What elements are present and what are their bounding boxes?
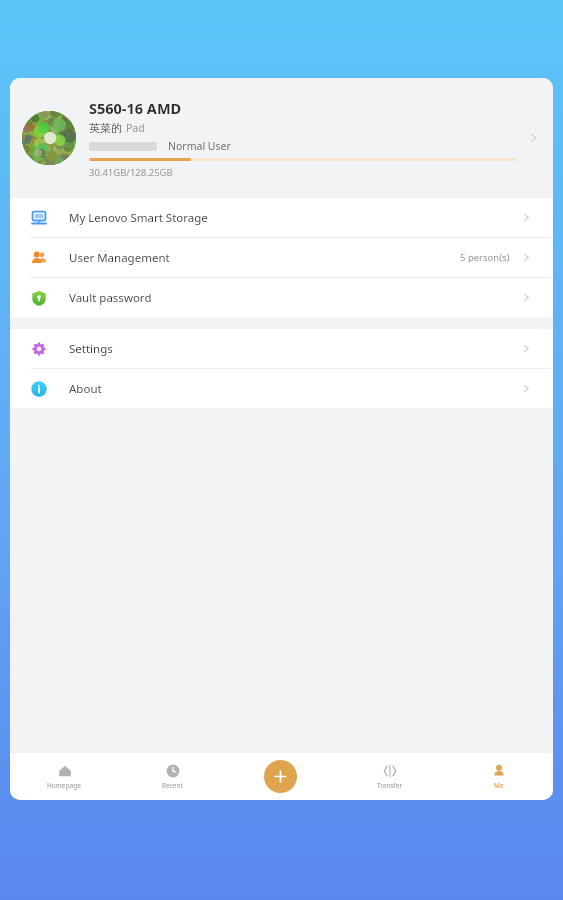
staticText: Recent [162, 781, 183, 790]
button[interactable]: Add [264, 760, 297, 793]
staticText: Pad [126, 121, 145, 135]
button[interactable]: About [10, 369, 553, 408]
button[interactable]: User Management [10, 238, 553, 277]
staticText: Homepage [47, 781, 81, 790]
staticText: My Lenovo Smart Storage [69, 210, 208, 226]
staticText: Normal User [168, 139, 231, 153]
button[interactable]: Homepage [10, 753, 118, 800]
button[interactable]: Vault password [10, 278, 553, 317]
button[interactable]: Transfer [335, 753, 444, 800]
staticText: Transfer [377, 781, 403, 790]
staticText: 英菜的 [89, 121, 122, 135]
staticText: Settings [69, 341, 113, 357]
staticText: About [69, 381, 102, 397]
button[interactable]: Recent [118, 753, 226, 800]
staticText: User Management [69, 250, 170, 266]
button[interactable]: S560-16 AMD [10, 78, 553, 198]
staticText: 5 person(s) [460, 251, 510, 264]
button[interactable]: Settings [10, 329, 553, 368]
button[interactable]: My Lenovo Smart Storage [10, 198, 553, 237]
staticText: Me [494, 781, 504, 790]
staticText: 30.41GB/128.25GB [89, 166, 173, 179]
staticText: Vault password [69, 290, 152, 306]
staticText: S560-16 AMD [89, 98, 182, 118]
button[interactable]: Me [444, 753, 553, 800]
